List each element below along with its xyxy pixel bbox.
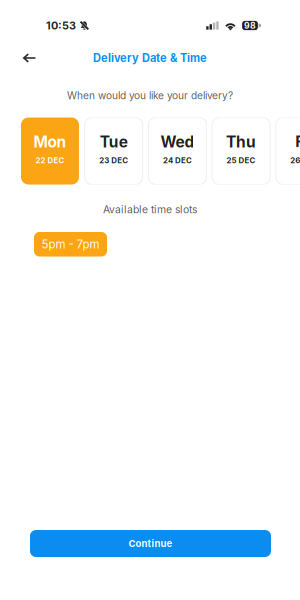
button[interactable]: Continue: [30, 530, 271, 557]
button[interactable]: Fri: [276, 117, 300, 184]
staticText: 22 DEC: [35, 156, 64, 165]
staticText: Wed: [160, 132, 194, 151]
button[interactable]: Wed: [148, 117, 206, 184]
staticText: 10:53: [46, 19, 76, 32]
staticText: Continue: [128, 538, 172, 549]
button[interactable]: 5pm - 7pm: [34, 232, 107, 256]
button[interactable]: Tue: [85, 117, 143, 184]
staticText: 98: [244, 20, 256, 31]
staticText: 26 DEC: [290, 156, 300, 165]
staticText: Tue: [100, 132, 128, 151]
button[interactable]: Back: [15, 45, 43, 71]
staticText: 23 DEC: [99, 156, 128, 165]
staticText: When would you like your delivery?: [67, 89, 233, 102]
staticText: 5pm - 7pm: [41, 237, 99, 251]
staticText: Fri: [295, 132, 300, 151]
staticText: Thu: [226, 132, 256, 151]
staticText: Available time slots: [103, 203, 197, 216]
button[interactable]: Mon: [21, 117, 79, 184]
staticText: Mon: [33, 132, 66, 151]
button[interactable]: Thu: [212, 117, 270, 184]
staticText: 25 DEC: [227, 156, 256, 165]
staticText: Delivery Date & Time: [93, 51, 207, 65]
staticText: 24 DEC: [163, 156, 192, 165]
